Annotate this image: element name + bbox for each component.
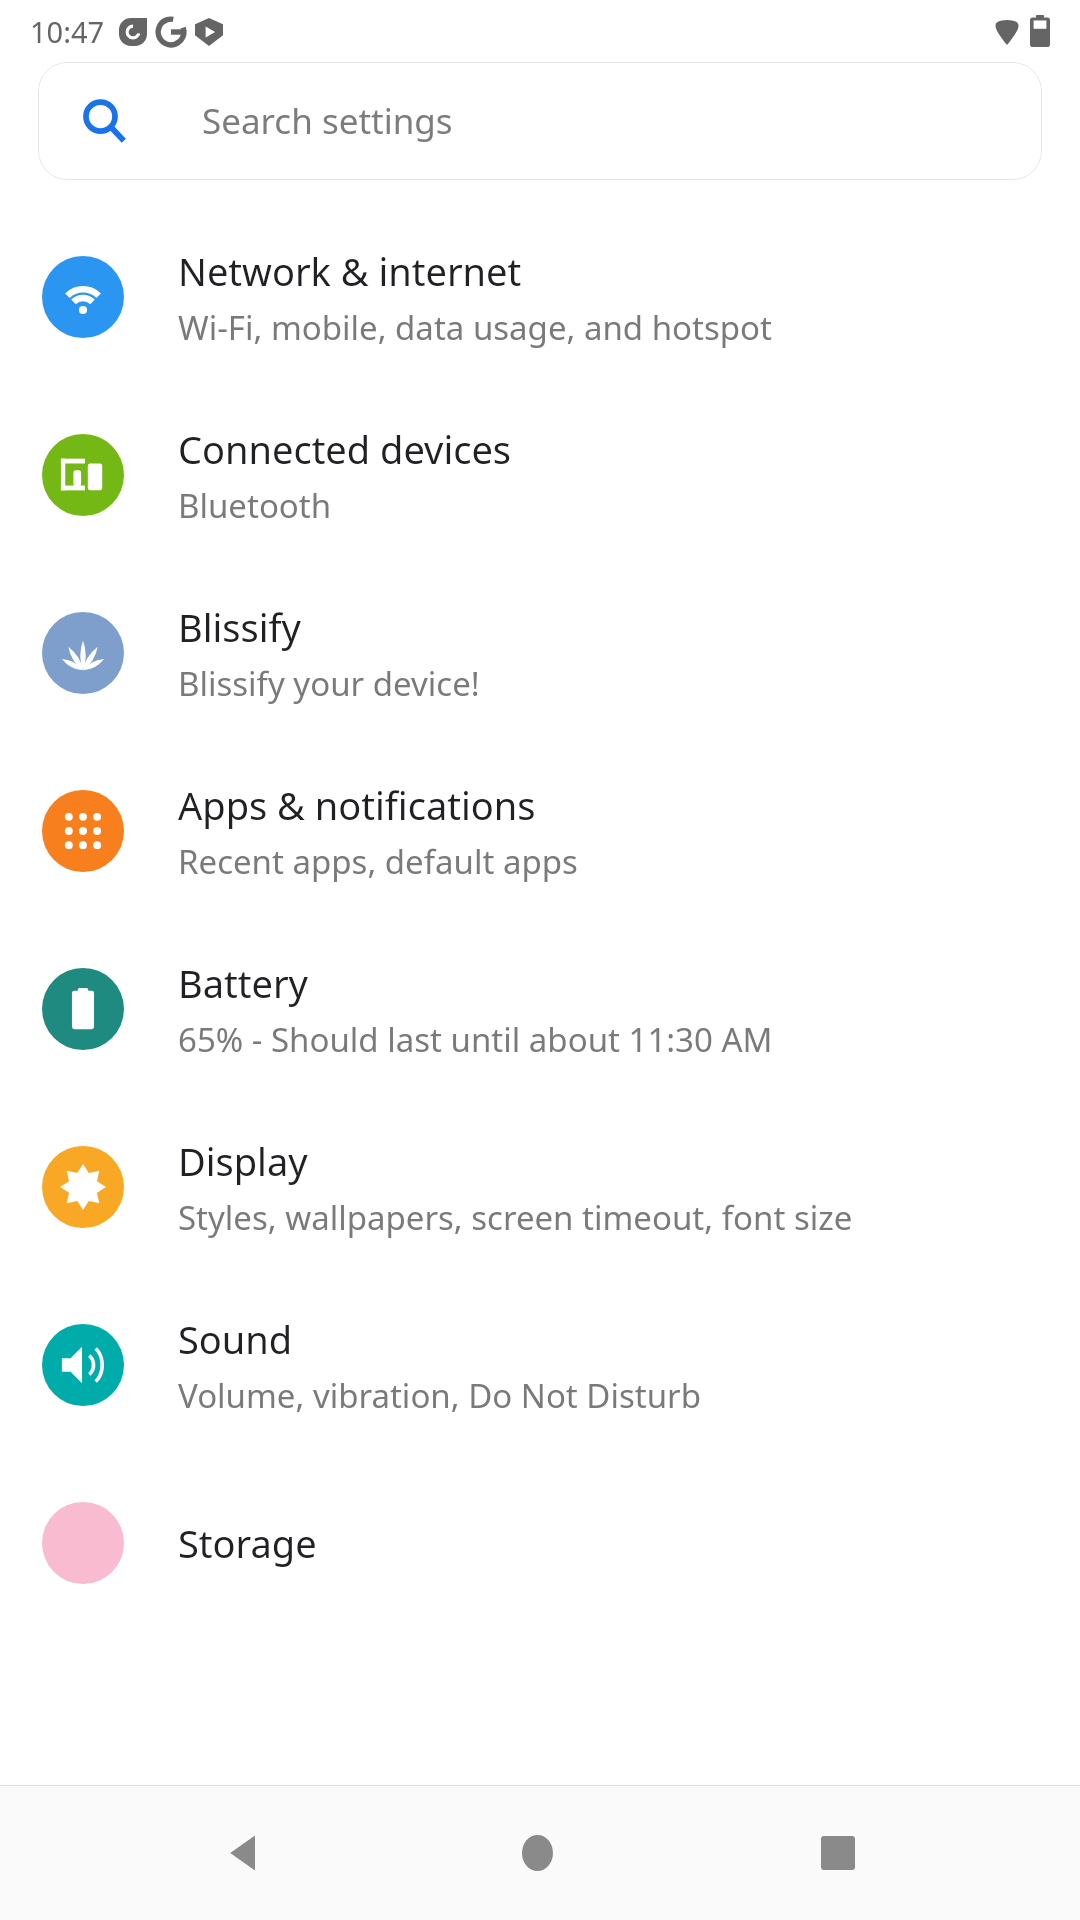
staticText: Connected devices [178, 423, 512, 475]
button[interactable]: Home [485, 1798, 595, 1908]
button[interactable]: Search settings [38, 62, 1042, 180]
button[interactable]: Recent apps [783, 1798, 893, 1908]
staticText: Styles, wallpapers, screen timeout, font… [178, 1195, 853, 1240]
staticText: Wi-Fi, mobile, data usage, and hotspot [178, 305, 772, 350]
staticText: Recent apps, default apps [178, 839, 578, 884]
staticText: Network & internet [178, 245, 522, 297]
staticText: Display [178, 1135, 308, 1187]
button[interactable]: Network & internet [0, 208, 1080, 386]
staticText: Battery [178, 957, 308, 1009]
staticText: Search settings [202, 97, 453, 145]
staticText: 65% - Should last until about 11:30 AM [178, 1017, 773, 1062]
button[interactable]: Sound [0, 1276, 1080, 1454]
staticText: Apps & notifications [178, 779, 536, 831]
staticText: Volume, vibration, Do Not Disturb [178, 1373, 701, 1418]
button[interactable]: Storage [0, 1454, 1080, 1632]
staticText: Storage [178, 1517, 317, 1569]
staticText: Blissify your device! [178, 661, 480, 706]
button[interactable]: Connected devices [0, 386, 1080, 564]
button[interactable]: Back [188, 1798, 298, 1908]
staticText: Bluetooth [178, 483, 332, 528]
button[interactable]: Blissify [0, 564, 1080, 742]
staticText: Sound [178, 1313, 293, 1365]
staticText: Blissify [178, 601, 301, 653]
button[interactable]: Apps & notifications [0, 742, 1080, 920]
button[interactable]: Display [0, 1098, 1080, 1276]
staticText: 10:47 [30, 12, 105, 51]
button[interactable]: Battery [0, 920, 1080, 1098]
